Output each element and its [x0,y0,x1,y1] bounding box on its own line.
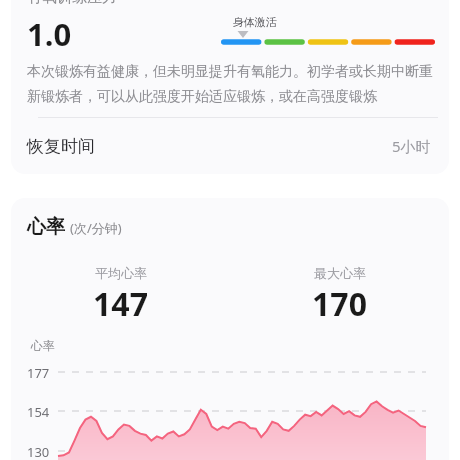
staticText: 有氧训练压力 [27,0,117,7]
staticText: 最大心率 [314,265,366,281]
staticText: 本次锻炼有益健康，但未明显提升有氧能力。初学者或长期中断重新锻炼者，可以从此强度… [27,63,437,105]
staticText: 平均心率 [95,265,147,281]
button[interactable]: 最大心率 [230,265,449,326]
staticText: (次/分钟) [70,219,122,237]
button[interactable]: 有氧训练压力 [11,0,449,174]
staticText: 心率 [31,338,55,353]
other: 训练强度区间 [221,29,435,49]
other: 心率曲线图 [11,338,449,460]
staticText: 心率 [27,215,65,239]
staticText: 130 [27,443,50,460]
staticText: 154 [27,403,50,421]
button[interactable]: 心率 [11,198,449,460]
button[interactable]: 恢复时间 [11,118,449,174]
staticText: 1.0 [27,13,72,55]
staticText: 恢复时间 [27,136,95,157]
staticText: 147 [93,282,148,326]
staticText: 身体激活 [233,15,277,29]
staticText: 177 [27,364,50,382]
staticText: 170 [312,282,367,326]
button[interactable]: 平均心率 [11,265,230,326]
staticText: 5小时 [392,136,431,156]
